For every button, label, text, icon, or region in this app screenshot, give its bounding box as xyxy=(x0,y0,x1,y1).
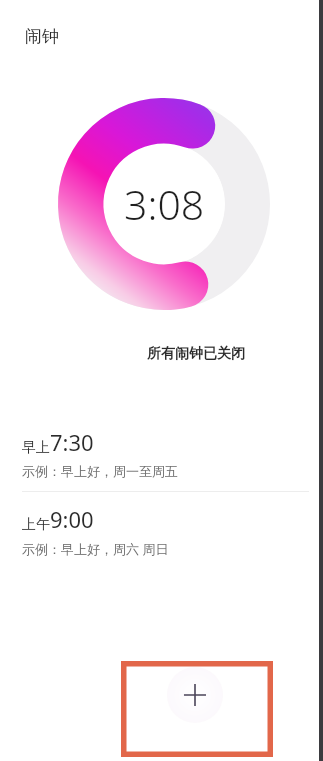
staticText: 3:08 xyxy=(124,176,205,232)
staticText: 早上 xyxy=(22,439,50,457)
staticText: 9:00 xyxy=(50,504,94,534)
button[interactable]: 上午 xyxy=(0,492,323,570)
button[interactable]: 早上 xyxy=(0,415,323,491)
button[interactable]: 添加闹钟 xyxy=(167,667,223,723)
staticText: 所有闹钟已关闭 xyxy=(147,345,245,363)
staticText: 上午 xyxy=(22,516,50,534)
staticText: 示例：早上好，周一至周五 xyxy=(22,463,178,479)
staticText: 示例：早上好，周六 周日 xyxy=(22,540,169,558)
staticText: 7:30 xyxy=(50,427,94,457)
staticText: 闹钟 xyxy=(25,26,59,47)
